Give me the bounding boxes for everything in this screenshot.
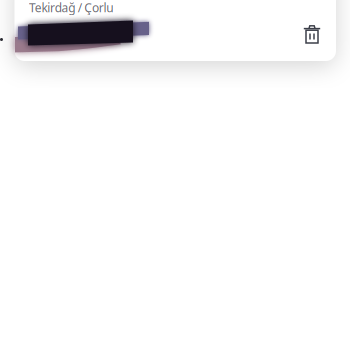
staticText: Tekirdağ / Çorlu: [29, 0, 113, 15]
button[interactable]: Delete: [296, 18, 328, 50]
